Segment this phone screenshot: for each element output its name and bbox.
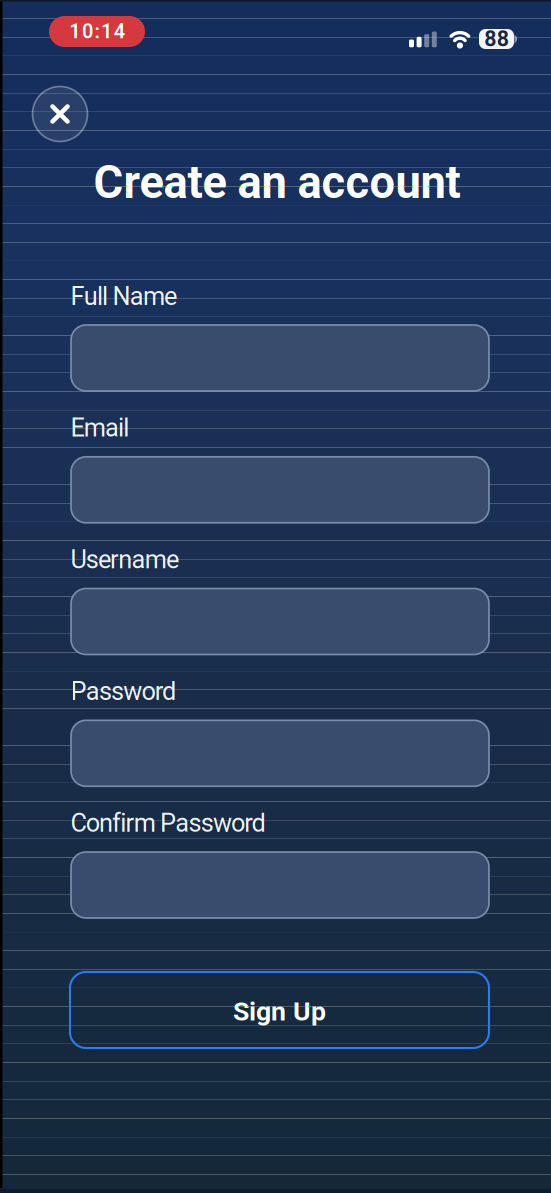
staticText: Username [70, 545, 179, 574]
button[interactable]: Sign Up [70, 972, 489, 1048]
staticText: 10:14 [69, 20, 125, 43]
staticText: Create an account [93, 156, 460, 209]
staticText: Email [70, 413, 129, 443]
staticText: 88 [484, 26, 509, 51]
staticText: Password [70, 676, 176, 706]
staticText: Confirm Password [70, 808, 265, 838]
staticText: Sign Up [233, 996, 326, 1027]
button[interactable]: Screen recording [49, 16, 145, 47]
button[interactable]: Close [32, 86, 87, 141]
staticText: Full Name [70, 282, 177, 311]
